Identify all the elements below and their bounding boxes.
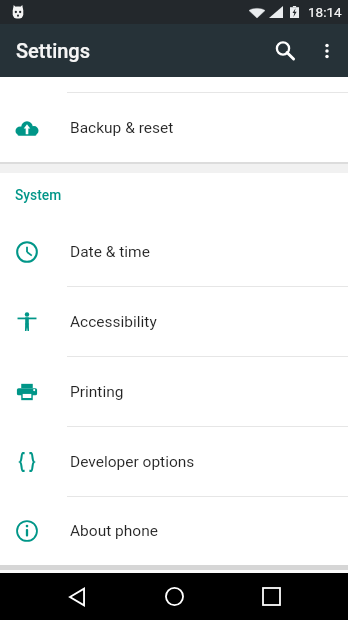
staticText: 18:14 <box>308 4 342 20</box>
staticText: System <box>15 187 62 203</box>
button[interactable]: Recent apps <box>247 573 295 620</box>
button[interactable]: Home <box>150 573 198 620</box>
button[interactable]: Search <box>263 29 307 73</box>
button[interactable]: More options <box>307 31 347 71</box>
staticText: Accessibility <box>70 313 157 331</box>
staticText: About phone <box>70 522 158 540</box>
button[interactable]: Printing <box>0 357 348 426</box>
staticText: Settings <box>16 39 91 62</box>
staticText: Developer options <box>70 453 195 471</box>
staticText: Backup & reset <box>70 119 174 137</box>
staticText: Date & time <box>70 243 150 261</box>
button[interactable]: Accessibility <box>0 287 348 356</box>
button[interactable]: Developer options <box>0 427 348 496</box>
staticText: Printing <box>70 383 124 401</box>
button[interactable]: About phone <box>0 497 348 565</box>
button[interactable]: Backup & reset <box>0 93 348 162</box>
button[interactable]: Date & time <box>0 217 348 286</box>
button[interactable]: Back <box>53 573 101 620</box>
